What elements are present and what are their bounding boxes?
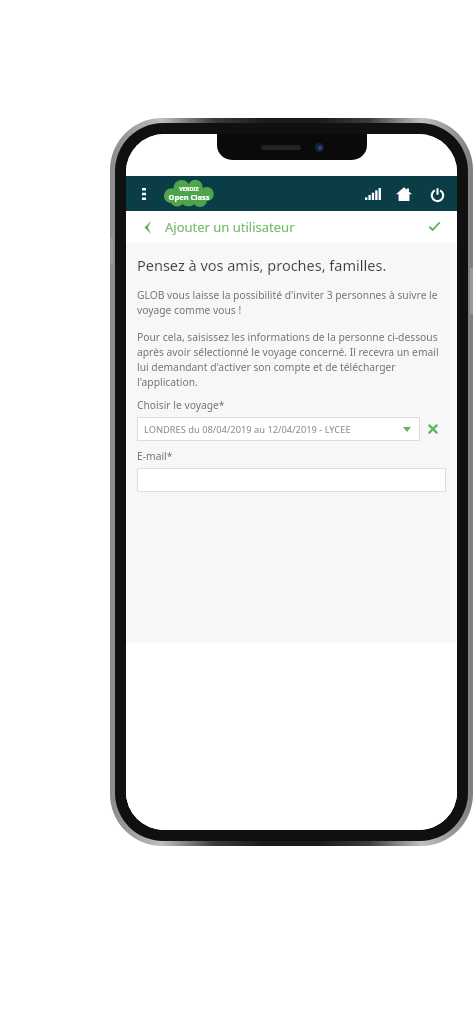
button[interactable]: Back (139, 218, 295, 236)
staticText: Open Class (168, 192, 210, 202)
staticText: GLOB vous laisse la possibilité d'invite… (137, 288, 446, 317)
button[interactable]: Signal strength (363, 185, 381, 203)
button[interactable] (137, 468, 446, 492)
staticText: E-mail* (137, 449, 173, 463)
staticText: Ajouter un utilisateur (165, 218, 295, 236)
staticText: LONDRES du 08/04/2019 au 12/04/2019 - LY… (144, 423, 351, 436)
staticText: Pensez à vos amis, proches, familles. (137, 255, 387, 275)
staticText: Choisir le voyage* (137, 398, 225, 412)
other: Open dropdown (401, 423, 413, 435)
staticText: VERDIE (179, 185, 199, 192)
staticText: Pour cela, saisissez les informations de… (137, 330, 446, 389)
button[interactable]: Menu (136, 186, 152, 202)
button[interactable]: LONDRES du 08/04/2019 au 12/04/2019 - LY… (137, 417, 420, 441)
button[interactable]: Power off (427, 184, 447, 204)
other: Back (139, 219, 155, 235)
button[interactable]: Verdie Open Class (160, 180, 217, 207)
button[interactable]: Validate (424, 217, 444, 237)
button[interactable]: Home (394, 184, 414, 204)
button[interactable]: Clear selection (420, 417, 446, 441)
